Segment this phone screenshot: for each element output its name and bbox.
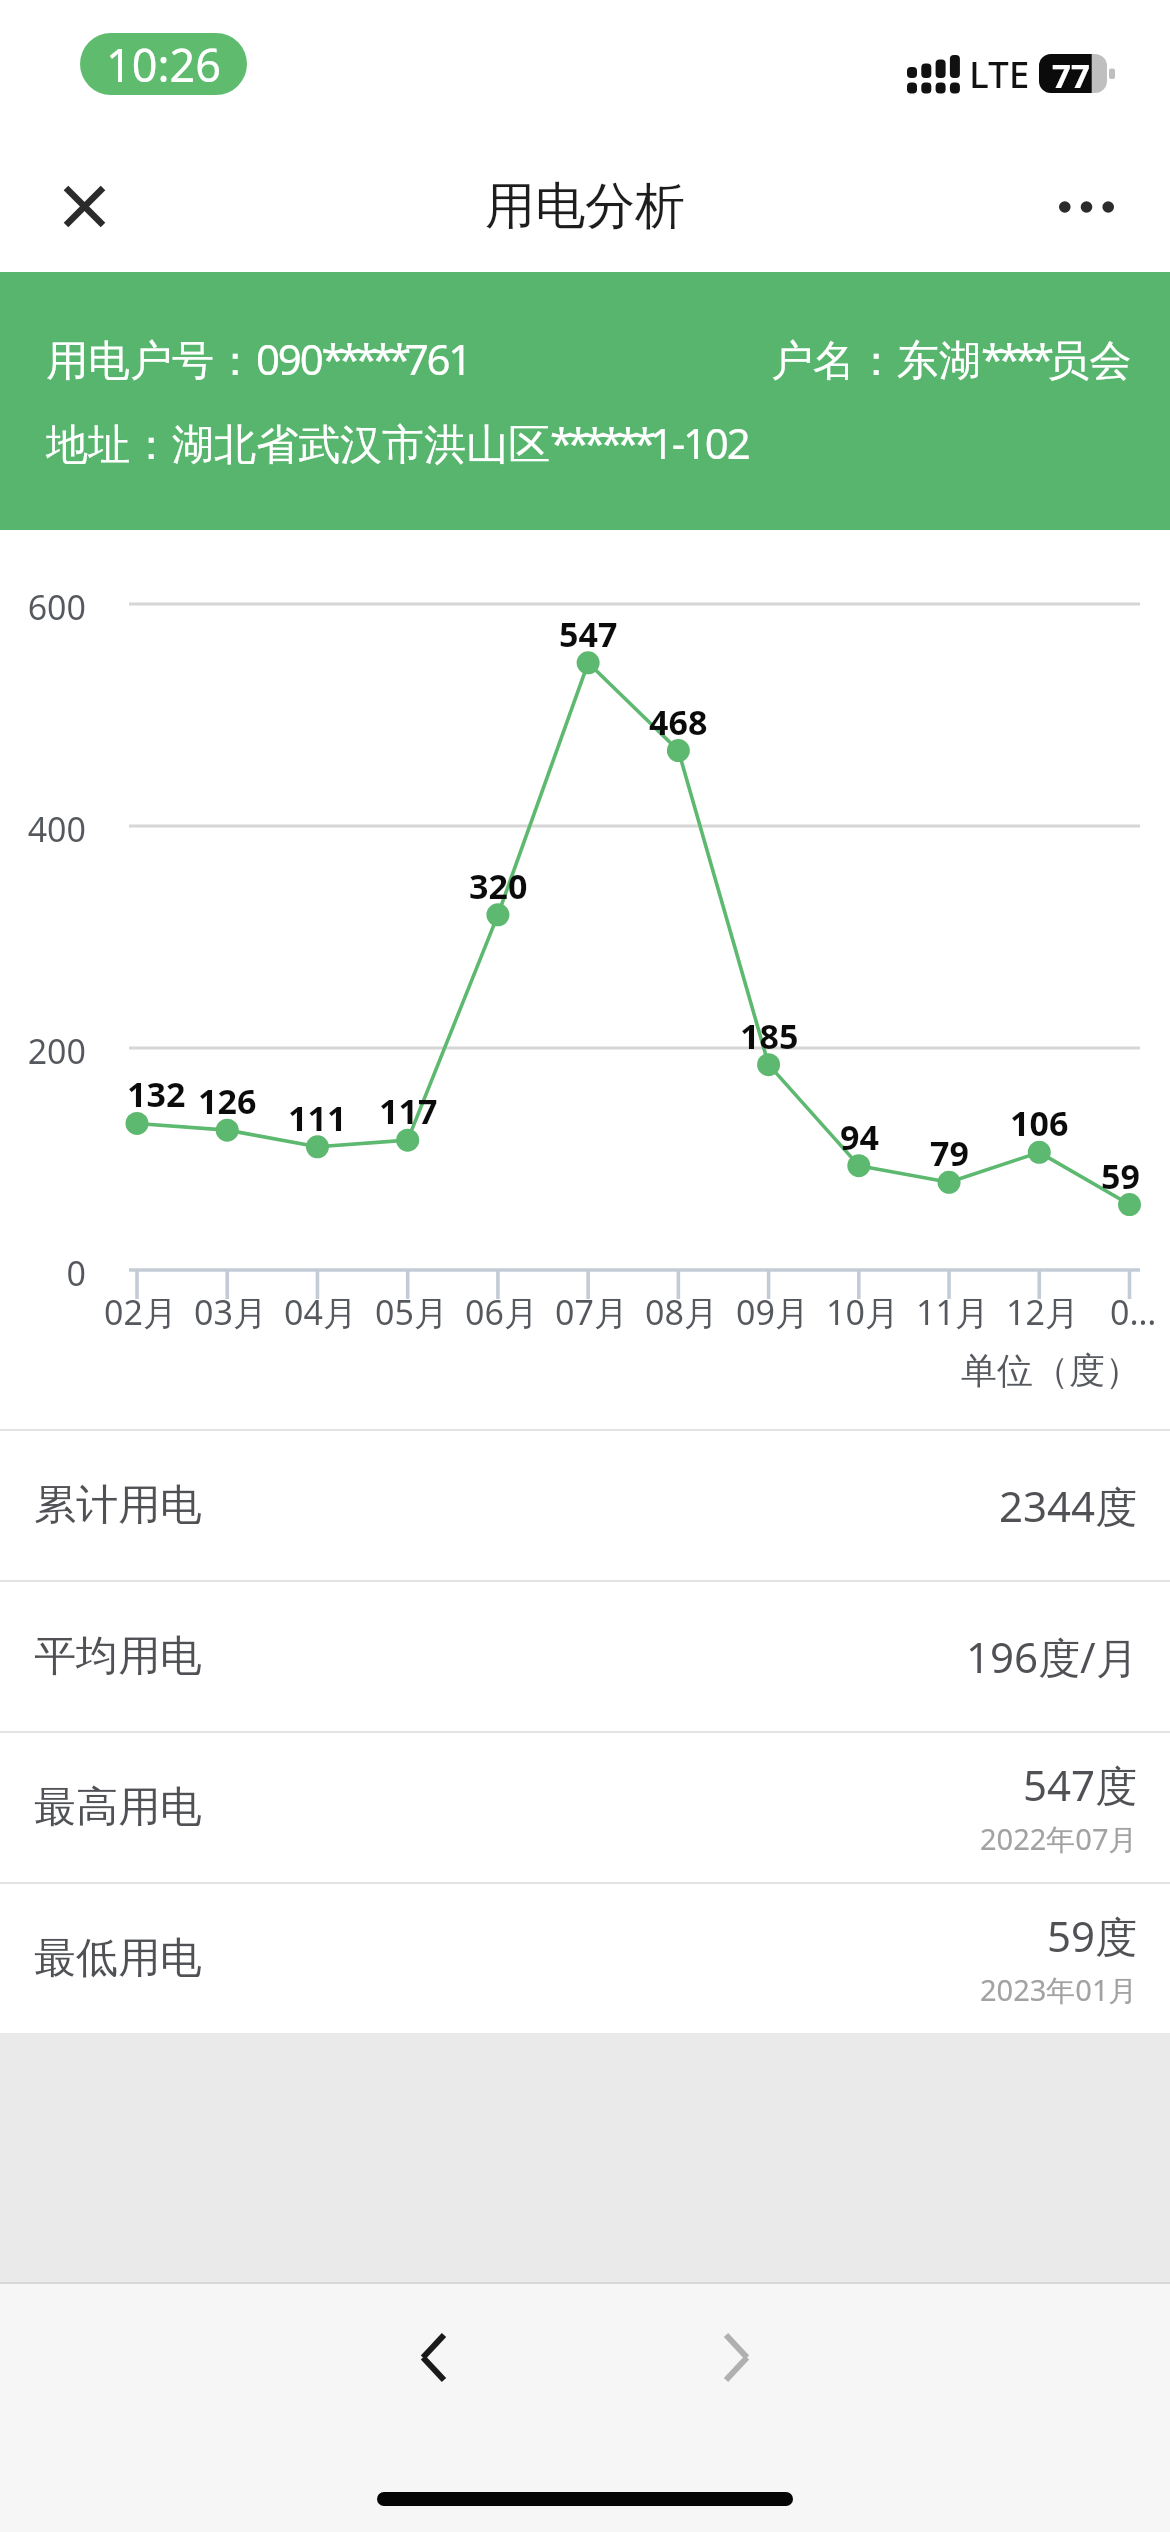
staticText: 2023年01月 xyxy=(980,1970,1138,2010)
button[interactable]: 累计用电 xyxy=(0,1431,1170,1580)
staticText: 79 xyxy=(930,1130,969,1176)
staticText: 468 xyxy=(649,699,708,745)
staticText: 196度/月 xyxy=(966,1628,1138,1685)
button[interactable]: More options xyxy=(1047,168,1125,246)
staticText: 10:26 xyxy=(106,34,222,95)
staticText: 地址：湖北省武汉市洪山区******1-102 xyxy=(46,414,749,471)
staticText: 400 xyxy=(27,806,86,852)
staticText: 12月 xyxy=(1006,1289,1079,1335)
staticText: 132 xyxy=(127,1071,186,1117)
staticText: 最高用电 xyxy=(34,1781,202,1834)
staticText: 77 xyxy=(1052,53,1090,92)
staticText: 05月 xyxy=(375,1289,448,1335)
staticText: 平均用电 xyxy=(34,1630,202,1683)
staticText: 0 xyxy=(66,1250,86,1296)
staticText: 03月 xyxy=(194,1289,267,1335)
staticText: 07月 xyxy=(555,1289,628,1335)
staticText: 59 xyxy=(1101,1153,1140,1199)
staticText: 08月 xyxy=(645,1289,718,1335)
staticText: 02月 xyxy=(104,1289,177,1335)
staticText: 09月 xyxy=(736,1289,809,1335)
staticText: 06月 xyxy=(465,1289,538,1335)
staticText: 0… xyxy=(1110,1289,1157,1335)
staticText: 04月 xyxy=(284,1289,357,1335)
staticText: 185 xyxy=(740,1013,799,1059)
staticText: 11月 xyxy=(916,1289,989,1335)
button[interactable]: Forward xyxy=(688,2309,784,2405)
staticText: 106 xyxy=(1010,1100,1069,1146)
button[interactable]: Close xyxy=(48,170,120,242)
staticText: 200 xyxy=(27,1028,86,1074)
staticText: 累计用电 xyxy=(34,1479,202,1532)
staticText: 126 xyxy=(198,1078,257,1124)
button[interactable]: 最高用电 xyxy=(0,1733,1170,1882)
staticText: 600 xyxy=(27,584,86,630)
staticText: 户名：东湖****员会 xyxy=(771,330,1132,387)
staticText: 94 xyxy=(840,1114,879,1160)
staticText: 117 xyxy=(379,1088,438,1134)
staticText: 547 xyxy=(559,611,618,657)
staticText: 111 xyxy=(288,1095,347,1141)
staticText: 10月 xyxy=(826,1289,899,1335)
staticText: LTE xyxy=(969,48,1030,98)
staticText: 2344度 xyxy=(999,1477,1138,1534)
staticText: 59度 xyxy=(1047,1907,1138,1964)
staticText: 单位（度） xyxy=(961,1348,1141,1393)
staticText: 用电户号：090*****761 xyxy=(46,330,471,387)
button[interactable]: 最低用电 xyxy=(0,1884,1170,2033)
staticText: 547度 xyxy=(1023,1756,1138,1813)
button[interactable]: Back xyxy=(385,2309,481,2405)
staticText: 用电分析 xyxy=(485,175,685,238)
staticText: 320 xyxy=(469,863,528,909)
staticText: 2022年07月 xyxy=(980,1819,1138,1859)
staticText: 最低用电 xyxy=(34,1932,202,1985)
button[interactable]: 平均用电 xyxy=(0,1582,1170,1731)
